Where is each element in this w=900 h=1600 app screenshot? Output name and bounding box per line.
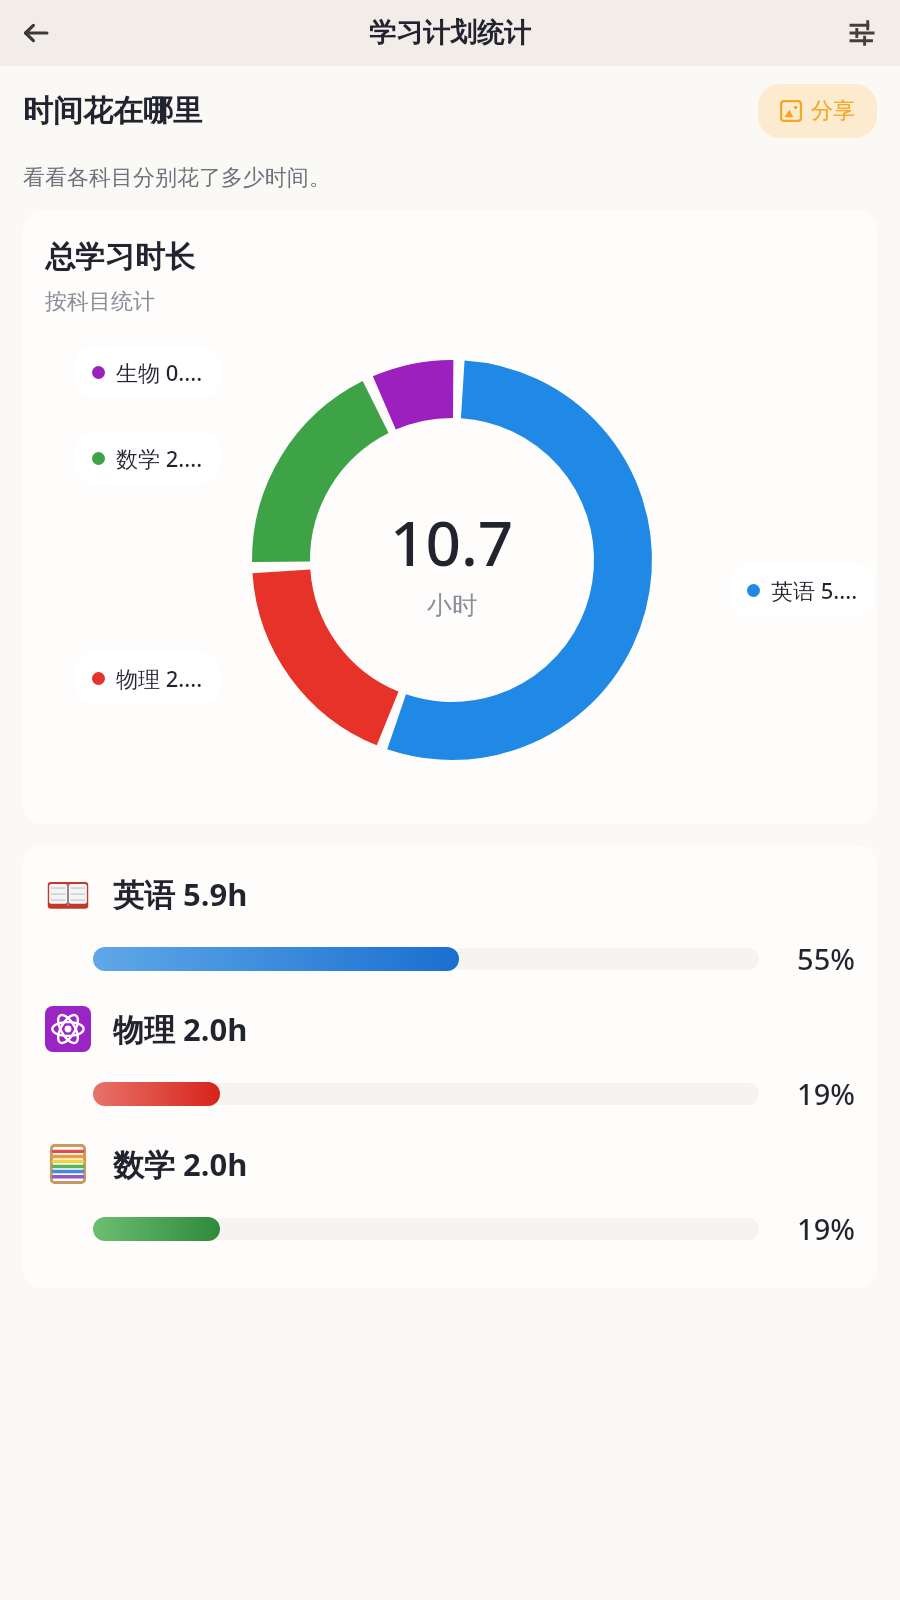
staticText: 看看各科目分别花了多少时间。 bbox=[23, 164, 331, 192]
staticText: 物理 2.0h bbox=[113, 1008, 248, 1050]
staticText: 生物 0.... bbox=[116, 357, 203, 387]
staticText: 数学 2.... bbox=[116, 443, 203, 473]
staticText: 总学习时长 bbox=[45, 238, 195, 276]
staticText: 英语 5.... bbox=[771, 575, 858, 605]
staticText: 19% bbox=[797, 1074, 855, 1113]
staticText: 10.7 bbox=[390, 500, 514, 584]
staticText: 按科目统计 bbox=[45, 288, 155, 316]
staticText: 分享 bbox=[811, 97, 855, 125]
button[interactable]: Settings bbox=[838, 9, 886, 57]
staticText: 数学 2.0h bbox=[113, 1143, 248, 1185]
staticText: 学习计划统计 bbox=[369, 16, 531, 50]
button[interactable]: 数学 2.... bbox=[75, 432, 220, 484]
button[interactable]: 生物 0.... bbox=[75, 346, 220, 398]
button[interactable]: 英语 5.... bbox=[730, 564, 875, 616]
button[interactable]: 总学习时长 bbox=[23, 210, 877, 824]
button[interactable]: 数学 2.0h bbox=[23, 1141, 877, 1248]
button[interactable]: 分享 bbox=[758, 84, 877, 138]
button[interactable]: Back bbox=[12, 9, 60, 57]
button[interactable]: 物理 2.0h bbox=[23, 1006, 877, 1113]
staticText: 时间花在哪里 bbox=[23, 92, 203, 130]
staticText: 小时 bbox=[427, 590, 477, 621]
staticText: 19% bbox=[797, 1209, 855, 1248]
staticText: 物理 2.... bbox=[116, 663, 203, 693]
button[interactable]: 物理 2.... bbox=[75, 652, 220, 704]
staticText: 英语 5.9h bbox=[113, 873, 248, 915]
staticText: 55% bbox=[797, 939, 855, 978]
button[interactable]: 英语 5.9h bbox=[23, 871, 877, 978]
